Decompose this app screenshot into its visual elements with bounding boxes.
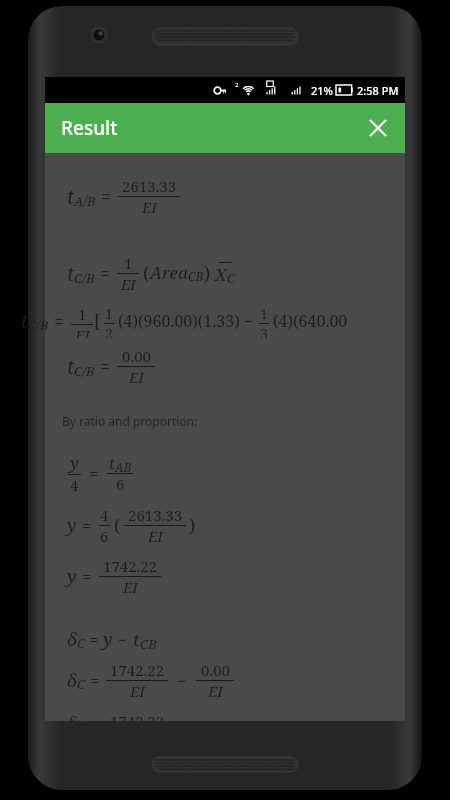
staticText: C bbox=[77, 718, 86, 728]
staticText: EI bbox=[121, 274, 136, 294]
staticText: y bbox=[67, 564, 77, 589]
staticText: = bbox=[89, 628, 99, 651]
staticText: 1742.22 bbox=[103, 556, 158, 576]
staticText: = bbox=[100, 261, 111, 286]
staticText: t bbox=[67, 261, 74, 287]
staticText: 1 bbox=[124, 253, 133, 273]
staticText: EI bbox=[130, 681, 145, 701]
staticText: 2:58 PM bbox=[357, 83, 399, 98]
staticText: ( bbox=[114, 513, 121, 538]
staticText: EI bbox=[142, 197, 157, 217]
staticText: t bbox=[67, 184, 74, 210]
staticText: y bbox=[103, 627, 113, 652]
staticText: A/B bbox=[74, 192, 96, 210]
staticText: ) bbox=[189, 513, 196, 538]
staticText: CB bbox=[140, 635, 157, 653]
staticText: 2 bbox=[235, 81, 239, 89]
staticText: 0.00 bbox=[201, 660, 230, 680]
staticText: C/B bbox=[74, 362, 95, 380]
staticText: 1742.22 bbox=[110, 660, 165, 680]
staticText: − bbox=[177, 670, 187, 692]
staticText: By ratio and proportion: bbox=[62, 413, 198, 429]
staticText: C bbox=[77, 634, 86, 652]
staticText: = bbox=[90, 669, 100, 692]
staticText: 1 bbox=[260, 304, 268, 323]
staticText: 2 bbox=[105, 324, 113, 338]
staticText: CB bbox=[188, 268, 204, 284]
staticText: C bbox=[227, 270, 235, 286]
staticText: 1 bbox=[78, 304, 87, 324]
staticText: Area bbox=[150, 261, 188, 284]
staticText: 4 bbox=[100, 505, 109, 525]
staticText: = bbox=[101, 184, 112, 209]
staticText: 21% bbox=[311, 83, 333, 98]
staticText: 1 bbox=[105, 304, 113, 323]
staticText: t bbox=[133, 628, 140, 651]
staticText: ) bbox=[204, 261, 211, 286]
staticText: t bbox=[21, 308, 28, 334]
staticText: ( bbox=[143, 261, 150, 286]
staticText: X bbox=[215, 263, 227, 286]
staticText: − bbox=[244, 310, 254, 332]
staticText: EI bbox=[148, 526, 163, 546]
staticText: 2613.33 bbox=[122, 176, 177, 196]
staticText: C bbox=[77, 675, 86, 693]
staticText: EI bbox=[129, 367, 144, 387]
staticText: Result bbox=[61, 115, 118, 141]
staticText: δ bbox=[67, 668, 77, 693]
staticText: = bbox=[54, 309, 65, 334]
staticText: δ bbox=[67, 627, 77, 652]
staticText: (4)(640.00 bbox=[273, 310, 348, 332]
staticText: 2613.33 bbox=[128, 505, 183, 525]
staticText: C/B bbox=[28, 316, 49, 334]
button[interactable]: Close bbox=[361, 111, 395, 145]
staticText: 6 bbox=[100, 526, 109, 546]
staticText: 0.00 bbox=[122, 346, 151, 366]
staticText: y bbox=[70, 451, 79, 474]
staticText: = bbox=[100, 354, 111, 379]
staticText: (4)(960.00)(1.33) bbox=[118, 310, 240, 332]
staticText: = bbox=[89, 462, 99, 485]
staticText: EI bbox=[208, 681, 223, 701]
staticText: t bbox=[109, 453, 115, 473]
staticText: = bbox=[82, 514, 92, 537]
staticText: EI bbox=[75, 325, 90, 338]
staticText: 1742.22 bbox=[110, 711, 165, 721]
staticText: [ bbox=[94, 309, 101, 334]
staticText: 3 bbox=[260, 324, 268, 338]
staticText: 4 bbox=[70, 475, 79, 495]
staticText: t bbox=[67, 354, 74, 380]
staticText: y bbox=[67, 513, 77, 538]
staticText: C/B bbox=[74, 269, 95, 287]
staticText: EI bbox=[123, 577, 138, 597]
staticText: = bbox=[82, 565, 92, 588]
staticText: AB bbox=[115, 459, 132, 475]
staticText: δ bbox=[67, 711, 77, 721]
staticText: 6 bbox=[116, 474, 125, 494]
staticText: − bbox=[118, 629, 128, 651]
